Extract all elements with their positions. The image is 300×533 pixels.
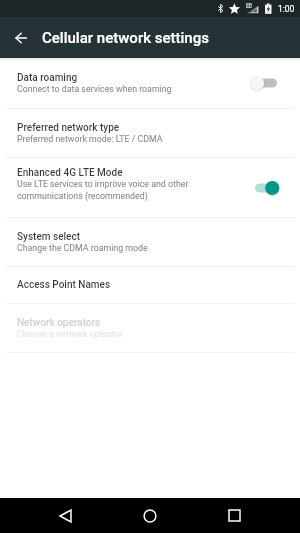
button[interactable]: Data roaming: [0, 58, 300, 108]
staticText: Connect to data services when roaming: [17, 84, 172, 94]
staticText: Use LTE services to improve voice and ot…: [17, 179, 189, 201]
button[interactable]: Preferred network type: [0, 109, 300, 157]
staticText: Preferred network mode: LTE / CDMA: [17, 134, 163, 144]
staticText: Enhanced 4G LTE Mode: [17, 167, 123, 179]
button[interactable]: Recent apps: [211, 498, 257, 533]
staticText: Change the CDMA roaming mode: [17, 243, 148, 253]
staticText: Data roaming: [17, 72, 78, 84]
staticText: 1:00: [278, 4, 295, 14]
button[interactable]: Home: [127, 498, 173, 533]
staticText: Preferred network type: [17, 122, 120, 134]
staticText: Network operators: [17, 317, 101, 329]
button[interactable]: Off: [248, 74, 284, 92]
button[interactable]: Network operators: [0, 304, 300, 352]
button[interactable]: Access Point Names: [0, 267, 300, 303]
staticText: System select: [17, 231, 80, 243]
staticText: Cellular network settings: [42, 29, 209, 47]
button[interactable]: Navigate up: [0, 17, 42, 58]
staticText: Choose a network operator: [17, 329, 123, 339]
button[interactable]: Back: [42, 498, 88, 533]
button[interactable]: System select: [0, 218, 300, 266]
button[interactable]: On: [248, 179, 284, 197]
staticText: Access Point Names: [17, 279, 111, 291]
button[interactable]: Enhanced 4G LTE Mode: [0, 158, 300, 217]
